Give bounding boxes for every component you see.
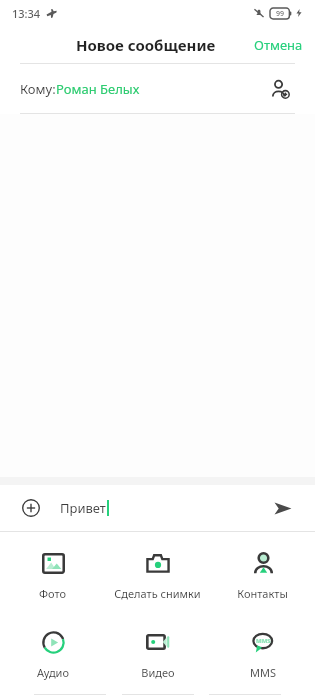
- staticText: Отмена: [254, 36, 303, 54]
- staticText: Кому:: [20, 80, 56, 98]
- staticText: 99: [276, 9, 285, 19]
- staticText: Новое сообщение: [76, 35, 216, 55]
- button[interactable]: Add contact: [265, 74, 295, 104]
- staticText: Видео: [141, 665, 175, 680]
- staticText: MMS: [250, 665, 276, 680]
- button[interactable]: Фото: [0, 544, 105, 605]
- staticText: Привет: [60, 499, 106, 517]
- button[interactable]: Send: [267, 493, 297, 523]
- staticText: MMS: [256, 637, 271, 645]
- button[interactable]: Аудио: [0, 623, 105, 684]
- button[interactable]: Отмена: [242, 28, 315, 62]
- button[interactable]: Контакты: [210, 544, 315, 605]
- button[interactable]: Add attachment: [18, 495, 44, 521]
- button[interactable]: Кому:: [0, 64, 315, 113]
- staticText: 13:34: [12, 6, 41, 21]
- staticText: Роман Белых: [56, 80, 140, 98]
- staticText: Сделать снимки: [114, 586, 201, 601]
- button[interactable]: Сделать снимки: [105, 544, 210, 605]
- button[interactable]: Видео: [105, 623, 210, 684]
- staticText: Контакты: [237, 586, 288, 601]
- button[interactable]: Привет: [60, 499, 267, 517]
- staticText: Аудио: [37, 665, 69, 680]
- button[interactable]: MMS: [210, 623, 315, 684]
- staticText: Фото: [39, 586, 66, 601]
